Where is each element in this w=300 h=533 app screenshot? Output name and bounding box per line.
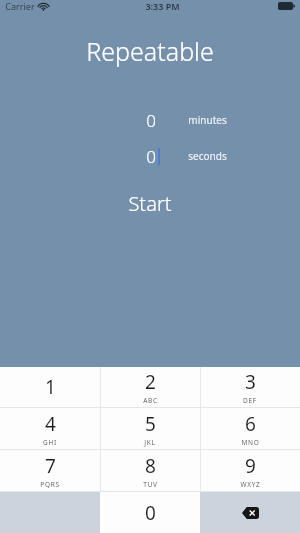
staticText: ABC bbox=[143, 396, 158, 405]
button[interactable]: 4 bbox=[0, 408, 100, 449]
staticText: JKL bbox=[144, 438, 156, 447]
staticText: WXYZ bbox=[240, 480, 261, 489]
staticText: 3:33 PM bbox=[145, 0, 180, 12]
button[interactable]: 7 bbox=[0, 450, 100, 491]
staticText: Carrier bbox=[5, 0, 35, 12]
button[interactable]: 9 bbox=[200, 450, 300, 491]
button[interactable]: 2 bbox=[100, 367, 200, 407]
button[interactable]: 1 bbox=[0, 367, 100, 407]
staticText: 1 bbox=[45, 374, 56, 400]
staticText: 2 bbox=[145, 369, 156, 395]
button[interactable]: 3 bbox=[200, 367, 300, 407]
staticText: Start bbox=[128, 190, 172, 217]
staticText: 5 bbox=[145, 411, 156, 437]
button[interactable]: Start bbox=[114, 186, 186, 221]
staticText: 0 bbox=[146, 109, 156, 132]
staticText: PQRS bbox=[40, 480, 60, 489]
staticText: 6 bbox=[245, 411, 256, 437]
button[interactable]: Backspace bbox=[200, 492, 300, 533]
button[interactable]: 5 bbox=[100, 408, 200, 449]
staticText: GHI bbox=[43, 438, 57, 447]
staticText: DEF bbox=[243, 396, 257, 405]
staticText: minutes bbox=[188, 113, 227, 127]
staticText: 8 bbox=[145, 453, 156, 479]
staticText: MNO bbox=[241, 438, 260, 447]
staticText: TUV bbox=[143, 480, 158, 489]
staticText: 0 bbox=[146, 145, 156, 168]
button[interactable]: 0 bbox=[120, 144, 166, 168]
button[interactable]: 6 bbox=[200, 408, 300, 449]
staticText: 7 bbox=[45, 453, 56, 479]
staticText: Repeatable bbox=[86, 34, 214, 68]
button[interactable]: 0 bbox=[100, 492, 200, 533]
staticText: 0 bbox=[145, 500, 156, 526]
staticText: 3 bbox=[245, 369, 256, 395]
staticText: 4 bbox=[45, 411, 56, 437]
button[interactable]: 8 bbox=[100, 450, 200, 491]
staticText: seconds bbox=[188, 149, 227, 163]
button[interactable]: 0 bbox=[120, 108, 166, 132]
staticText: 9 bbox=[245, 453, 256, 479]
